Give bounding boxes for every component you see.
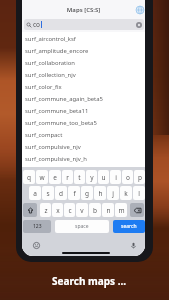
button[interactable]: surf_compact xyxy=(22,129,145,141)
button[interactable]: i xyxy=(110,170,121,184)
button[interactable]: d xyxy=(55,186,67,200)
staticText: 123 xyxy=(33,223,42,230)
staticText: surf_color_fix xyxy=(25,83,62,91)
button[interactable]: surf_amplitude_encore xyxy=(22,45,145,57)
staticText: surf_aircontrol_ksf xyxy=(25,35,76,43)
button[interactable]: a xyxy=(29,186,41,200)
staticText: f xyxy=(73,189,76,198)
staticText: u xyxy=(101,173,106,182)
staticText: e xyxy=(53,173,57,182)
staticText: q xyxy=(27,173,31,182)
staticText: o xyxy=(126,173,130,182)
button[interactable]: Voice input xyxy=(129,241,137,249)
button[interactable]: surf_commune_again_beta5 xyxy=(22,93,145,105)
button[interactable]: Globe xyxy=(134,4,145,15)
staticText: j xyxy=(112,189,114,198)
button[interactable]: t xyxy=(74,170,85,184)
staticText: Maps [CS:S] xyxy=(22,6,145,14)
button[interactable]: b xyxy=(89,203,101,217)
button[interactable]: g xyxy=(81,186,93,200)
button[interactable]: z xyxy=(40,203,51,217)
staticText: surf_commune_beta11 xyxy=(25,107,89,115)
staticText: surf_compact xyxy=(25,131,63,139)
button[interactable]: k xyxy=(120,186,132,200)
staticText: surf_collection_njv xyxy=(25,71,76,79)
staticText: z xyxy=(44,206,48,215)
staticText: surf_compulsive_njv_h xyxy=(25,155,87,163)
staticText: r xyxy=(66,173,69,182)
staticText: b xyxy=(93,206,97,215)
button[interactable]: l xyxy=(133,186,145,200)
button[interactable]: j xyxy=(107,186,119,200)
button[interactable]: surf_commune_too_beta5 xyxy=(22,117,145,129)
button[interactable]: h xyxy=(94,186,106,200)
button[interactable]: surf_color_fix xyxy=(22,81,145,93)
button[interactable]: x xyxy=(52,203,63,217)
button[interactable]: e xyxy=(49,170,61,184)
staticText: surf_collaboration xyxy=(25,59,75,67)
staticText: co xyxy=(33,20,41,29)
button[interactable]: w xyxy=(36,170,48,184)
button[interactable]: q xyxy=(23,170,35,184)
staticText: h xyxy=(98,189,103,198)
staticText: n xyxy=(106,206,111,215)
button[interactable]: co xyxy=(24,19,144,30)
staticText: c xyxy=(68,206,72,215)
staticText: p xyxy=(138,173,142,182)
staticText: l xyxy=(138,189,140,198)
staticText: space xyxy=(75,223,89,230)
button[interactable]: Emoji keyboard xyxy=(32,241,40,249)
button[interactable]: surf_aircontrol_ksf xyxy=(22,33,145,45)
button[interactable]: o xyxy=(122,170,133,184)
staticText: a xyxy=(33,189,37,198)
button[interactable]: m xyxy=(115,203,127,217)
button[interactable]: c xyxy=(64,203,75,217)
button[interactable]: 123 xyxy=(23,220,51,233)
staticText: surf_compulsive_njv xyxy=(25,143,81,151)
staticText: v xyxy=(80,206,84,215)
staticText: surf_amplitude_encore xyxy=(25,47,89,55)
button[interactable]: p xyxy=(134,170,145,184)
staticText: s xyxy=(46,189,50,198)
staticText: Search maps ... xyxy=(52,274,127,288)
staticText: k xyxy=(124,189,128,198)
button[interactable]: s xyxy=(42,186,54,200)
button[interactable]: v xyxy=(76,203,88,217)
button[interactable]: y xyxy=(86,170,97,184)
staticText: d xyxy=(59,189,63,198)
staticText: i xyxy=(115,173,117,182)
button[interactable]: n xyxy=(102,203,114,217)
button[interactable]: surf_collaboration xyxy=(22,57,145,69)
staticText: t xyxy=(78,173,81,182)
button[interactable]: surf_compulsive_njv_h xyxy=(22,153,145,165)
button[interactable]: Shift xyxy=(23,203,37,217)
button[interactable]: surf_collection_njv xyxy=(22,69,145,81)
button[interactable]: r xyxy=(62,170,73,184)
button[interactable]: space xyxy=(55,220,109,233)
staticText: surf_commune_too_beta5 xyxy=(25,119,97,127)
staticText: surf_commune_again_beta5 xyxy=(25,95,103,103)
button[interactable]: Backspace xyxy=(130,203,144,217)
staticText: search xyxy=(121,223,137,230)
button[interactable]: Clear text xyxy=(136,22,142,28)
staticText: g xyxy=(85,189,89,198)
button[interactable]: search xyxy=(113,220,145,233)
button[interactable]: surf_compulsive_njv xyxy=(22,141,145,153)
staticText: m xyxy=(118,206,125,215)
button[interactable]: f xyxy=(68,186,80,200)
staticText: y xyxy=(90,173,94,182)
button[interactable]: u xyxy=(98,170,109,184)
button[interactable]: surf_commune_beta11 xyxy=(22,105,145,117)
staticText: x xyxy=(56,206,60,215)
staticText: w xyxy=(39,173,45,182)
